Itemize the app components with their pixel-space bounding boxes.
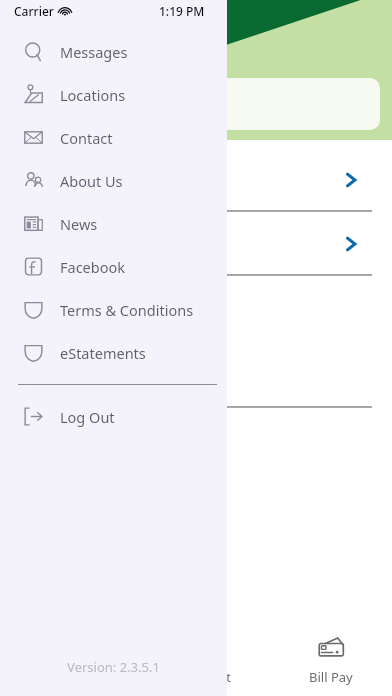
staticText: Version: 2.3.5.1	[0, 658, 227, 676]
staticText: Contact	[60, 128, 113, 148]
button[interactable]: Deposit	[146, 624, 269, 696]
button[interactable]: Open details	[0, 148, 382, 212]
button[interactable]: Contact	[0, 116, 227, 159]
staticText: Messages	[60, 42, 128, 62]
staticText: Terms & Conditions	[60, 300, 194, 320]
staticText: Facebook	[60, 257, 126, 277]
staticText: Log Out	[60, 407, 115, 427]
button[interactable]: Locations	[0, 73, 227, 116]
other: Open details	[344, 237, 358, 251]
button[interactable]: Open details	[0, 212, 382, 276]
staticText: News	[60, 214, 98, 234]
button[interactable]: Facebook	[0, 245, 227, 288]
button[interactable]: Messages	[0, 30, 227, 73]
staticText: About Us	[60, 171, 123, 191]
button[interactable]	[0, 276, 382, 408]
button[interactable]: eStatements	[0, 331, 227, 374]
button[interactable]: Terms & Conditions	[0, 288, 227, 331]
button[interactable]: News	[0, 202, 227, 245]
staticText: Locations	[60, 85, 126, 105]
other: Open details	[344, 173, 358, 187]
button[interactable]: About Us	[0, 159, 227, 202]
staticText: 1:19 PM	[159, 3, 205, 19]
staticText: eStatements	[60, 343, 146, 363]
staticText: Scheduled	[35, 94, 109, 114]
button[interactable]: Log Out	[0, 395, 227, 438]
staticText: Carrier	[14, 3, 54, 19]
button[interactable]: Scheduled	[0, 78, 380, 130]
staticText: Deposit	[184, 668, 231, 686]
button[interactable]: Bill Pay	[269, 624, 392, 696]
staticText: Bill Pay	[309, 668, 353, 686]
